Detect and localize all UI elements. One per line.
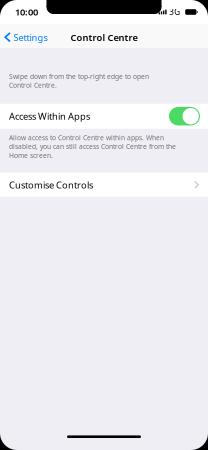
button[interactable]: Customise Controls bbox=[0, 173, 208, 197]
button[interactable]: Access Within Apps bbox=[0, 104, 208, 129]
staticText: Allow access to Control Centre within ap… bbox=[9, 133, 176, 160]
staticText: Access Within Apps bbox=[9, 110, 90, 122]
staticText: Control Centre bbox=[70, 31, 137, 44]
staticText: 3G bbox=[169, 7, 180, 17]
staticText: Customise Controls bbox=[9, 179, 93, 191]
button[interactable]: Settings bbox=[0, 27, 54, 48]
staticText: Settings bbox=[14, 31, 48, 44]
staticText: 10:00 bbox=[15, 6, 38, 18]
staticText: Swipe down from the top-right edge to op… bbox=[9, 72, 149, 90]
